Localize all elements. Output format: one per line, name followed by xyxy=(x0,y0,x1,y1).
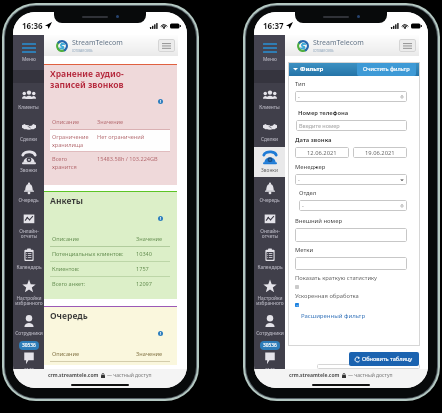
button[interactable] xyxy=(298,228,404,242)
staticText: Календарь xyxy=(16,264,42,271)
staticText: 16:36 xyxy=(22,20,43,31)
staticText: Звонки xyxy=(261,167,278,174)
staticText: 16:37 xyxy=(263,20,284,31)
button[interactable]: Клиенты xyxy=(254,83,285,115)
button[interactable]: Info xyxy=(158,216,163,221)
staticText: Фильтр xyxy=(300,65,324,73)
staticText: crm.streamtele.com xyxy=(48,372,99,379)
button[interactable]: Open menu xyxy=(158,39,175,52)
staticText: Значение xyxy=(136,350,163,358)
button[interactable]: Обновить таблицу xyxy=(355,355,413,363)
staticText: Описание xyxy=(52,350,136,358)
staticText: Всего анкет: xyxy=(52,280,136,288)
staticText: Меню xyxy=(263,56,277,63)
staticText: 15483.58h / 103.224GB xyxy=(97,155,158,163)
staticText: СОТОВАЯ СВЯЗЬ xyxy=(72,49,93,53)
staticText: Сделки xyxy=(261,136,278,143)
button[interactable]: Расширенный фильтр xyxy=(301,312,366,320)
staticText: Тип xyxy=(295,80,306,88)
button[interactable] xyxy=(298,257,404,270)
staticText: Онлайн- отчеты xyxy=(19,228,39,240)
button[interactable]: Настройки избранного xyxy=(13,275,44,310)
staticText: Настройки избранного xyxy=(256,295,284,307)
button[interactable]: Онлайн- отчеты xyxy=(13,207,44,244)
button[interactable]: Сделки xyxy=(13,115,44,147)
staticText: Номер телефона xyxy=(298,109,349,117)
staticText: 10340 xyxy=(136,250,152,258)
button[interactable]: Звонки xyxy=(254,147,285,177)
button[interactable]: Звонки xyxy=(13,147,44,177)
staticText: Описание xyxy=(52,235,136,243)
button[interactable]: Меню xyxy=(13,35,44,70)
button[interactable]: Open menu xyxy=(399,39,416,52)
staticText: Отдел xyxy=(299,189,317,197)
button[interactable]: Info xyxy=(158,99,163,104)
staticText: Дата звонка xyxy=(295,136,332,144)
staticText: crm.streamtele.com xyxy=(289,372,340,379)
staticText: Хранение аудио- записей звонков xyxy=(50,68,124,90)
staticText: Ограничение хранилища xyxy=(52,133,97,148)
staticText: Звонки xyxy=(20,167,37,174)
button[interactable]: 30536 xyxy=(254,341,285,369)
button[interactable]: Календарь xyxy=(13,244,44,275)
button[interactable]: Настройки избранного xyxy=(254,275,285,310)
button[interactable]: Очистить фильтр xyxy=(363,65,410,73)
staticText: Значение xyxy=(97,118,124,126)
staticText: - xyxy=(298,176,300,183)
button[interactable]: Онлайн- отчеты xyxy=(254,207,285,244)
button[interactable]: Очередь xyxy=(13,177,44,207)
staticText: Анкеты xyxy=(50,195,83,207)
staticText: 12.06.2021 xyxy=(307,149,337,157)
staticText: Очередь xyxy=(50,310,88,322)
staticText: Описание xyxy=(52,118,97,126)
button[interactable]: Сделки xyxy=(254,115,285,147)
button[interactable]: Сотрудники xyxy=(13,310,44,341)
staticText: Метки xyxy=(295,246,314,254)
staticText: — частный доступ xyxy=(348,372,393,379)
staticText: Ускоренная обработка xyxy=(295,292,359,300)
button[interactable]: Очередь xyxy=(254,177,285,207)
button[interactable]: - xyxy=(298,91,404,102)
staticText: - xyxy=(298,93,300,100)
staticText: 30536 xyxy=(22,342,36,349)
staticText: 19.06.2021 xyxy=(365,149,395,157)
staticText: StreamTelecom xyxy=(72,38,123,48)
staticText: Клиенты xyxy=(18,104,39,111)
button[interactable]: - xyxy=(298,174,404,185)
staticText: SMS xyxy=(265,367,275,369)
staticText: Очередь xyxy=(259,197,280,204)
staticText: SMS xyxy=(24,367,34,369)
button[interactable]: Введите номер xyxy=(299,120,404,131)
button[interactable]: 19.06.2021 xyxy=(353,147,407,158)
button[interactable]: 30536 xyxy=(13,341,44,369)
staticText: Сделки xyxy=(20,136,37,143)
staticText: Всего хранится xyxy=(52,155,97,170)
staticText: Обновить таблицу xyxy=(362,355,413,363)
button[interactable]: 12.06.2021 xyxy=(295,147,349,158)
staticText: Сотрудники xyxy=(15,330,43,337)
staticText: Менеджер xyxy=(295,163,326,171)
button[interactable]: - xyxy=(302,200,404,211)
button[interactable]: Меню xyxy=(254,35,285,70)
button[interactable]: Клиенты xyxy=(13,83,44,115)
staticText: Внешний номер xyxy=(295,217,342,225)
staticText: Клиентов: xyxy=(52,265,136,273)
staticText: Клиенты xyxy=(259,104,280,111)
staticText: Меню xyxy=(22,56,36,63)
button[interactable]: Показать краткую статистику xyxy=(295,285,299,289)
staticText: Значение xyxy=(136,235,163,243)
staticText: Календарь xyxy=(257,264,283,271)
staticText: StreamTelecom xyxy=(313,38,364,48)
staticText: Очередь xyxy=(18,197,39,204)
staticText: Онлайн- отчеты xyxy=(260,228,280,240)
staticText: Очистить фильтр xyxy=(363,65,410,73)
staticText: Показать краткую статистику xyxy=(295,274,378,282)
button[interactable]: Календарь xyxy=(254,244,285,275)
button[interactable]: Сотрудники xyxy=(254,310,285,341)
staticText: Сотрудники xyxy=(256,330,284,337)
button[interactable]: Info xyxy=(158,331,163,336)
staticText: — частный доступ xyxy=(107,372,152,379)
staticText: Нет ограничений xyxy=(97,133,145,141)
staticText: Настройки избранного xyxy=(15,295,43,307)
button[interactable]: Ускоренная обработка xyxy=(295,303,299,307)
